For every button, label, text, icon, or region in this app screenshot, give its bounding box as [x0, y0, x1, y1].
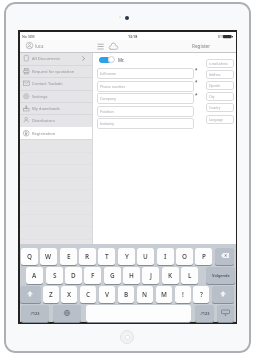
staticText: full name — [100, 71, 116, 76]
staticText: No SIM — [22, 34, 35, 39]
button[interactable]: D — [65, 267, 82, 284]
staticText: Q — [27, 252, 33, 261]
staticText: Position — [100, 109, 114, 114]
staticText: Registration — [32, 131, 56, 137]
button[interactable]: Q — [21, 248, 38, 265]
button[interactable]: S — [46, 267, 63, 284]
staticText: V — [105, 290, 110, 299]
staticText: City — [209, 95, 215, 99]
button[interactable]: U — [137, 248, 154, 265]
button[interactable]: J — [142, 267, 159, 284]
staticText: 13:18 — [128, 34, 138, 39]
button[interactable]: Address — [206, 70, 234, 79]
button[interactable]: Y — [118, 248, 135, 265]
button[interactable] — [86, 305, 191, 322]
staticText: 81% — [218, 34, 225, 38]
staticText: .?123 — [30, 311, 40, 316]
button[interactable] — [120, 330, 134, 344]
button[interactable]: Volgende — [206, 267, 235, 284]
staticText: * — [195, 79, 198, 85]
button[interactable]: Contact Tsubaki — [20, 77, 92, 89]
button[interactable]: Country — [206, 103, 234, 112]
staticText: X — [67, 290, 72, 299]
button[interactable]: full name — [97, 68, 194, 79]
button[interactable]: ! — [175, 286, 191, 303]
button[interactable]: F — [84, 267, 101, 284]
button[interactable] — [109, 42, 118, 50]
button[interactable] — [99, 57, 114, 63]
button[interactable]: R — [79, 248, 96, 265]
button[interactable]: I — [157, 248, 174, 265]
staticText: T — [105, 252, 109, 261]
staticText: * — [195, 67, 198, 73]
staticText: Phone number — [100, 84, 126, 89]
button[interactable]: Settings — [20, 90, 92, 102]
staticText: E — [67, 252, 71, 261]
button[interactable] — [215, 248, 234, 265]
staticText: e-mail adress — [209, 62, 228, 66]
button[interactable]: A — [26, 267, 43, 284]
staticText: Mr. — [118, 57, 125, 63]
button[interactable]: Language — [206, 115, 234, 124]
button[interactable]: T — [98, 248, 115, 265]
staticText: P — [202, 252, 206, 261]
button[interactable]: K — [162, 267, 179, 284]
button[interactable]: C — [80, 286, 96, 303]
button[interactable]: .?123 — [21, 305, 49, 322]
staticText: J — [150, 271, 152, 280]
button[interactable] — [20, 286, 41, 303]
staticText: Contact Tsubaki — [32, 81, 63, 87]
button[interactable]: City — [206, 92, 234, 101]
button[interactable] — [97, 43, 105, 50]
staticText: N — [142, 290, 148, 299]
staticText: ? — [200, 290, 203, 299]
button[interactable]: V — [99, 286, 115, 303]
staticText: Settings — [32, 94, 48, 100]
staticText: Industry — [100, 121, 115, 126]
staticText: C — [86, 290, 91, 299]
staticText: B — [124, 290, 129, 299]
button[interactable]: .?123 — [195, 305, 214, 322]
button[interactable]: Request for quotation — [20, 65, 92, 77]
staticText: K — [168, 271, 173, 280]
staticText: ! — [182, 290, 184, 299]
button[interactable]: All Documents — [20, 52, 92, 64]
button[interactable]: P — [195, 248, 212, 265]
button[interactable] — [217, 305, 234, 322]
button[interactable]: X — [61, 286, 77, 303]
staticText: Y — [125, 252, 129, 261]
button[interactable]: E — [60, 248, 77, 265]
button[interactable]: B — [118, 286, 134, 303]
button[interactable]: Distributors — [20, 114, 92, 126]
button[interactable]: Zipcode — [206, 81, 234, 90]
button[interactable]: H — [123, 267, 140, 284]
button[interactable]: N — [137, 286, 153, 303]
button[interactable]: W — [40, 248, 57, 265]
button[interactable]: Registration — [20, 127, 92, 139]
button[interactable]: Phone number — [97, 81, 194, 92]
button[interactable] — [212, 286, 234, 303]
staticText: A — [32, 271, 37, 280]
staticText: W — [45, 252, 52, 261]
button[interactable]: Z — [43, 286, 59, 303]
staticText: H — [129, 271, 134, 280]
button[interactable]: Company — [97, 93, 194, 104]
button[interactable]: ? — [193, 286, 209, 303]
button[interactable]: Industry — [97, 118, 194, 129]
staticText: Request for quotation — [32, 69, 75, 75]
staticText: R — [85, 252, 90, 261]
staticText: L — [188, 271, 192, 280]
staticText: Volgende — [212, 273, 230, 278]
button[interactable]: O — [176, 248, 193, 265]
button[interactable] — [53, 305, 81, 322]
button[interactable]: e-mail adress — [206, 59, 234, 68]
button[interactable]: L — [181, 267, 198, 284]
staticText: Zipcode — [209, 84, 221, 88]
button[interactable]: Position — [97, 106, 194, 117]
button[interactable]: G — [104, 267, 121, 284]
button[interactable]: My downloads — [20, 102, 92, 114]
staticText: D — [71, 271, 76, 280]
button[interactable]: Register — [186, 41, 216, 50]
staticText: O — [182, 252, 188, 261]
button[interactable]: M — [156, 286, 172, 303]
